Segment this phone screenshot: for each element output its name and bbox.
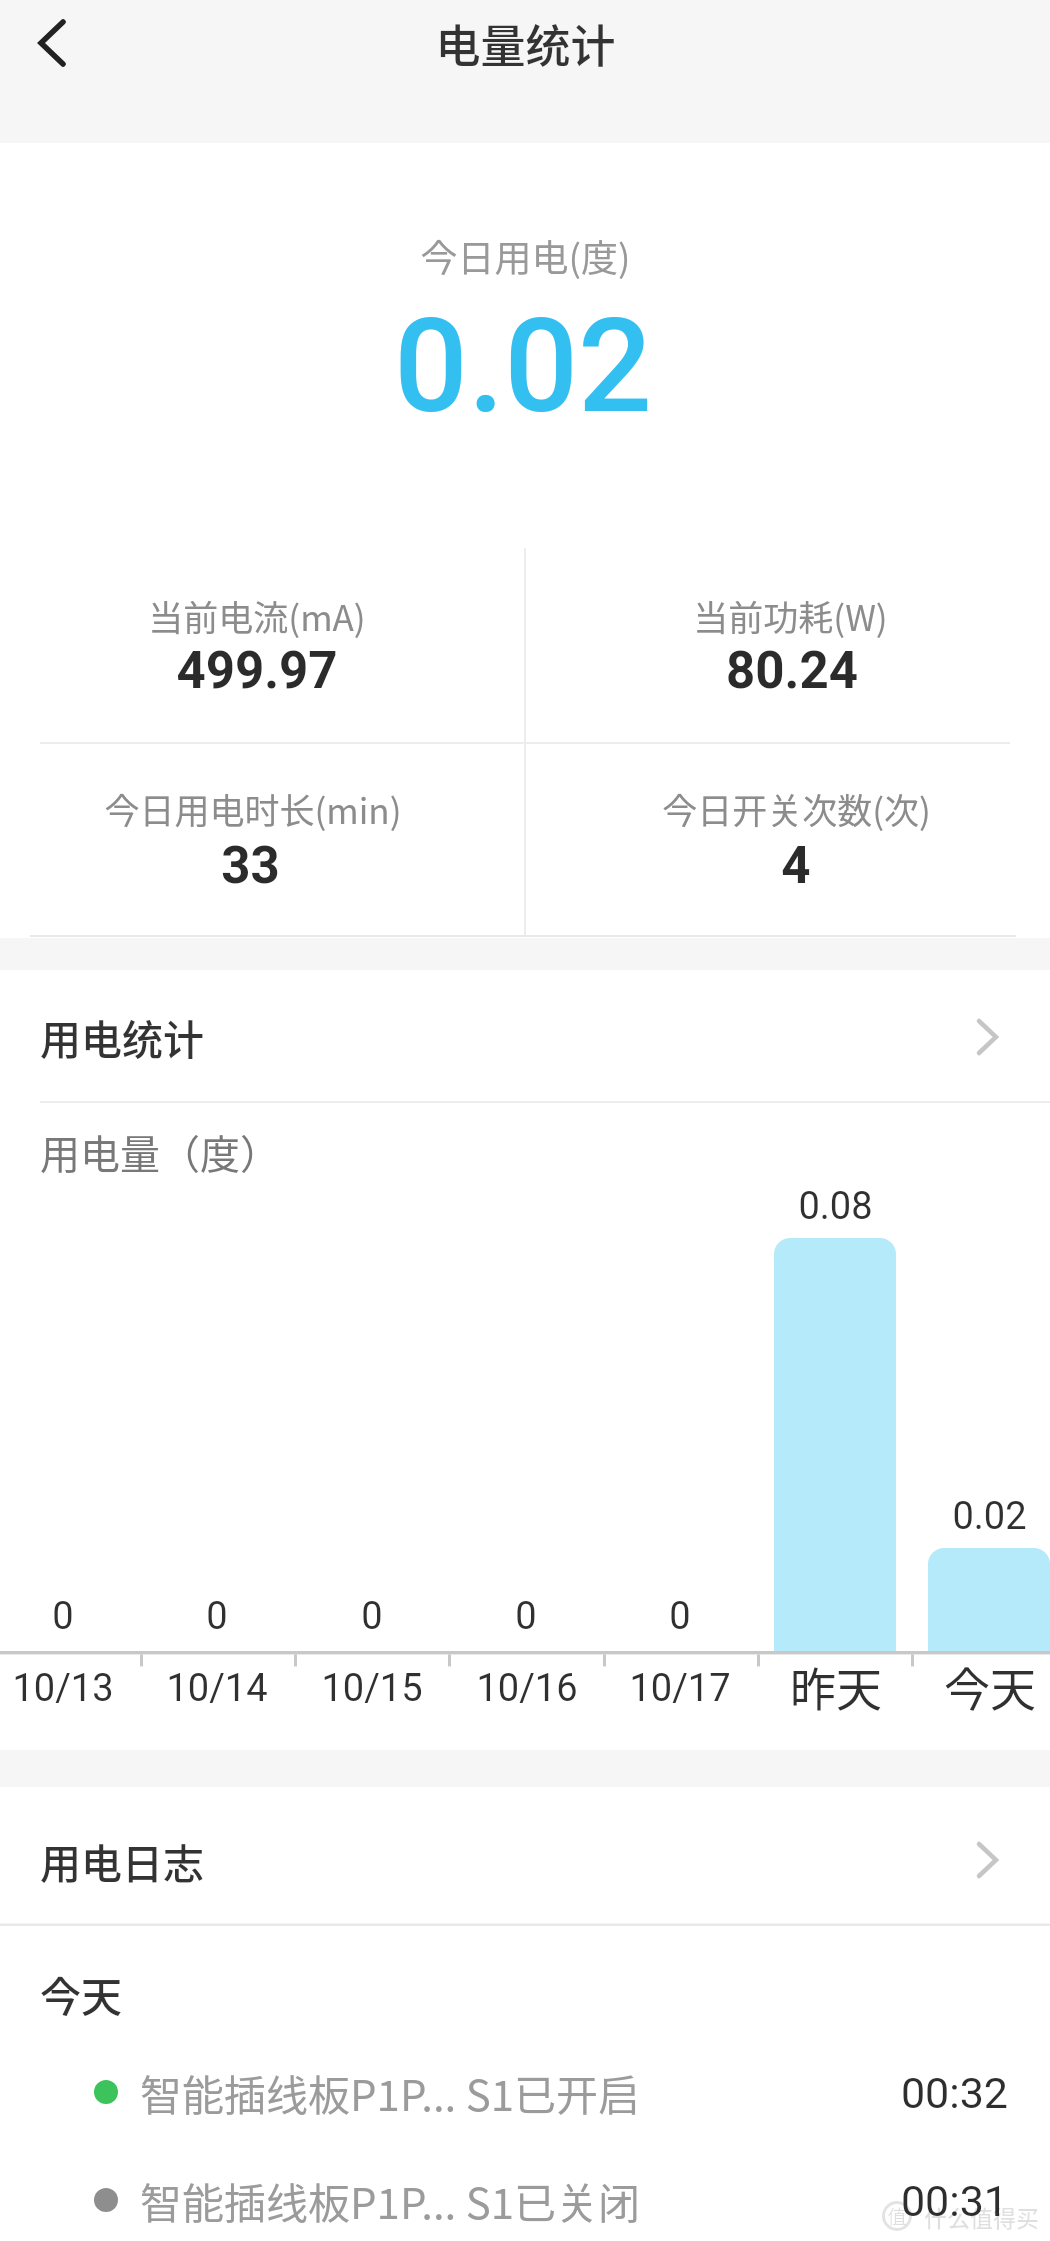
staticText: 80.24 (726, 641, 858, 701)
staticText: 用电统计 (40, 1007, 204, 1066)
staticText: 今天 (944, 1653, 1036, 1720)
staticText: 0 (515, 1594, 537, 1639)
button[interactable] (16, 8, 108, 80)
staticText: 499.97 (176, 641, 338, 701)
staticText: 0.08 (798, 1184, 873, 1229)
staticText: 用电量（度） (40, 1123, 280, 1181)
staticText: 智能插线板P1P... S1已关闭 (140, 2170, 641, 2231)
staticText: 0 (361, 1594, 383, 1639)
staticText: 用电日志 (40, 1831, 204, 1890)
staticText: 0.02 (394, 290, 652, 442)
staticText: 10/14 (166, 1666, 268, 1711)
staticText: 33 (221, 836, 280, 896)
staticText: 00:32 (900, 2068, 1008, 2118)
button[interactable] (0, 970, 1050, 1101)
staticText: 今日用电(度) (420, 229, 631, 283)
staticText: 4 (781, 836, 811, 896)
staticText: 0 (669, 1594, 691, 1639)
staticText: 0 (52, 1594, 74, 1639)
staticText: 0.02 (952, 1494, 1027, 1539)
staticText: 10/17 (629, 1666, 731, 1711)
button[interactable] (0, 1787, 1050, 1923)
staticText: 10/15 (321, 1666, 423, 1711)
staticText: 电量统计 (435, 11, 616, 76)
staticText: 值 (887, 2202, 907, 2230)
staticText: 0 (206, 1594, 228, 1639)
staticText: 当前功耗(W) (693, 590, 888, 641)
staticText: 10/16 (476, 1666, 578, 1711)
button[interactable] (0, 2148, 1050, 2241)
staticText: 什么值得买 (924, 2200, 1039, 2233)
staticText: 今天 (40, 1964, 122, 2023)
staticText: 今日用电时长(min) (104, 783, 402, 834)
staticText: 当前电流(mA) (148, 590, 366, 641)
staticText: 00:31 (900, 2176, 1008, 2226)
staticText: 昨天 (790, 1653, 882, 1720)
staticText: 10/13 (12, 1666, 114, 1711)
staticText: 今日开关次数(次) (662, 783, 931, 834)
staticText: 智能插线板P1P... S1已开启 (140, 2062, 641, 2123)
button[interactable] (0, 2040, 1050, 2144)
